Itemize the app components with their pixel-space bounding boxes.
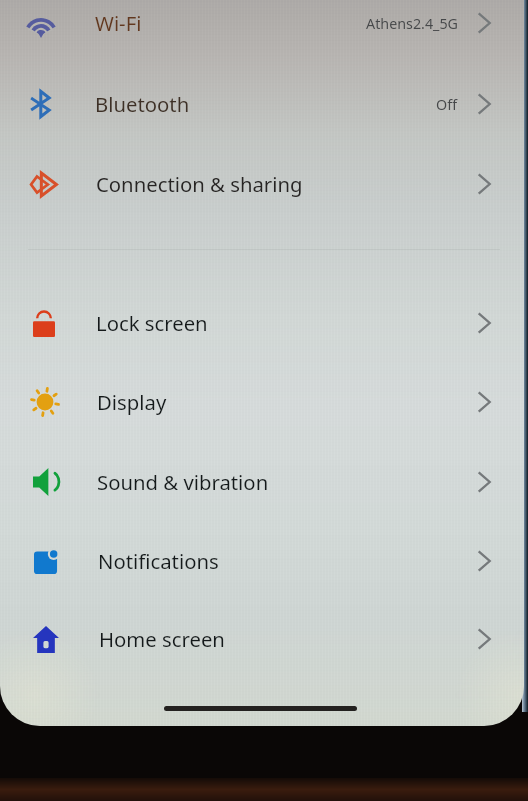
staticText: Notifications bbox=[98, 547, 219, 575]
button[interactable]: Wi-Fi bbox=[0, 0, 524, 61]
staticText: Wi-Fi bbox=[95, 9, 142, 37]
button[interactable]: Home screen bbox=[0, 601, 524, 677]
staticText: Sound & vibration bbox=[97, 468, 269, 496]
button[interactable]: Lock screen bbox=[0, 285, 524, 361]
button[interactable]: Notifications bbox=[0, 523, 524, 599]
staticText: Off bbox=[436, 95, 458, 114]
button[interactable]: Connection & sharing bbox=[0, 146, 524, 222]
staticText: Connection & sharing bbox=[96, 170, 303, 198]
staticText: Lock screen bbox=[96, 309, 208, 337]
button[interactable]: Sound & vibration bbox=[0, 444, 524, 520]
staticText: Bluetooth bbox=[95, 90, 190, 118]
staticText: Home screen bbox=[99, 625, 225, 653]
staticText: Athens2.4_5G bbox=[366, 14, 458, 33]
staticText: Display bbox=[97, 388, 167, 416]
button[interactable]: Display bbox=[0, 364, 524, 440]
button[interactable]: Bluetooth bbox=[0, 66, 524, 142]
